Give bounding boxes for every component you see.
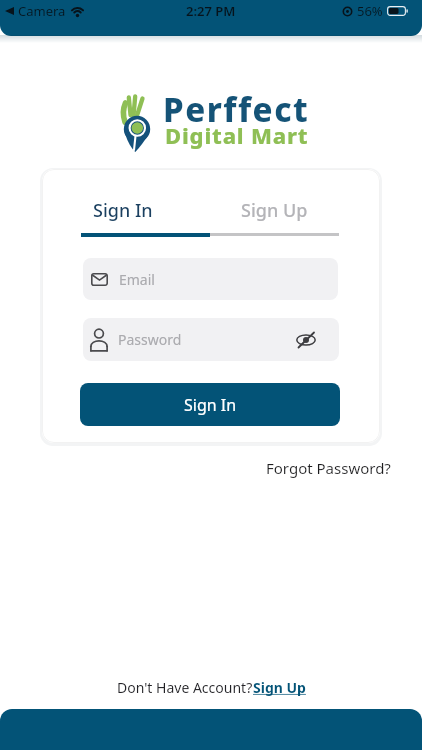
button[interactable]: Camera [5,2,86,20]
staticText: Email [119,270,155,289]
staticText: Sign In [93,198,153,223]
button[interactable]: Sign Up [253,678,306,697]
staticText: Forgot Password? [266,458,391,478]
button[interactable]: Email [83,258,338,300]
button[interactable]: Forgot Password? [266,458,422,478]
button[interactable]: Sign In [81,190,210,231]
staticText: Sign In [184,394,237,416]
button[interactable]: Sign Up [210,190,339,231]
staticText: Password [118,330,182,349]
staticText: Don't Have Account? [117,678,253,697]
staticText: 2:27 PM [186,2,236,20]
staticText: Perffect [163,87,310,132]
staticText: Sign Up [253,678,306,697]
staticText: Digital Mart [165,120,309,150]
staticText: Camera [18,2,66,20]
staticText: Sign Up [241,198,308,223]
button[interactable]: Password [83,318,339,361]
staticText: 56% [357,2,383,20]
button[interactable]: Sign In [80,383,340,426]
